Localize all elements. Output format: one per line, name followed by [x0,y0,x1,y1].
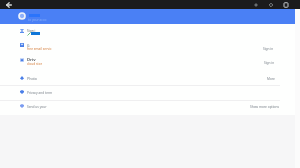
staticText: Sign i [27,28,36,32]
staticText: Send us your [27,105,47,109]
button[interactable]: Bookmark [252,1,260,9]
button[interactable] [0,102,300,115]
staticText: Show more options [250,105,279,109]
staticText: Photo [27,76,38,81]
staticText: Driv [27,57,36,63]
button[interactable]: Back [5,1,13,9]
button[interactable] [0,74,300,87]
staticText: More [267,77,275,81]
button[interactable] [0,27,300,40]
button[interactable] [0,42,300,55]
button[interactable]: Tabs [282,1,290,9]
staticText: cloud stor [27,62,42,66]
staticText: G [27,43,30,48]
staticText: Sign in [264,61,275,65]
staticText: to your acco [28,18,47,22]
button[interactable]: Extensions [267,1,275,9]
button[interactable] [0,57,300,70]
staticText: Sign in [263,47,274,51]
staticText: Privacy and term [27,91,53,95]
staticText: free email servic [27,47,52,51]
button[interactable] [0,88,300,101]
